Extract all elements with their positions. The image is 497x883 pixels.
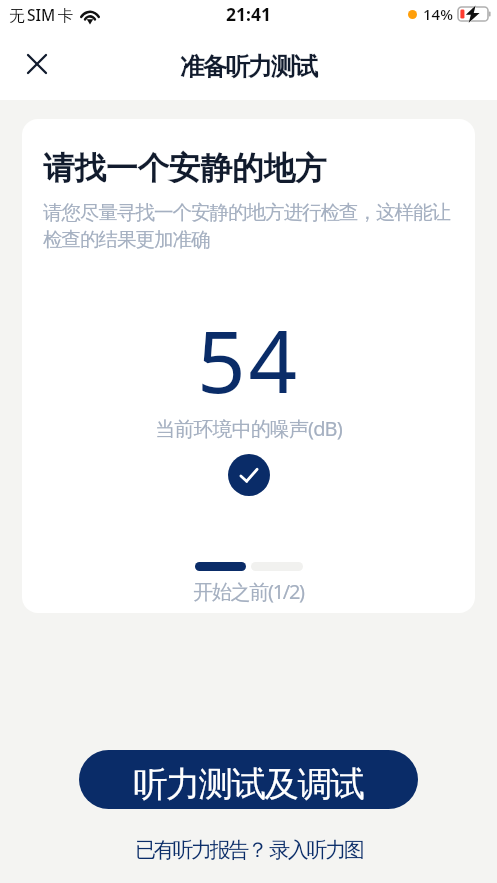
staticText: 开始之前(1/2) xyxy=(22,578,475,605)
staticText: 听力测试及调试 xyxy=(133,763,364,806)
staticText: 请您尽量寻找一个安静的地方进行检查，这样能让检查的结果更加准确 xyxy=(43,200,457,252)
staticText: 21:41 xyxy=(226,2,271,26)
staticText: 已有听力报告？ 录入听力图 xyxy=(135,835,363,864)
other: Noise level acceptable xyxy=(228,454,270,496)
button[interactable]: 听力测试及调试 xyxy=(79,750,418,809)
staticText: 54 xyxy=(22,302,475,418)
staticText: 当前环境中的噪声(dB) xyxy=(22,415,475,442)
staticText: 无 SIM 卡 xyxy=(9,4,74,25)
button[interactable]: 已有听力报告？ 录入听力图 xyxy=(125,832,373,867)
staticText: 准备听力测试 xyxy=(180,51,317,82)
staticText: 请找一个安静的地方 xyxy=(43,149,327,189)
button[interactable]: Close xyxy=(14,41,60,87)
staticText: 14% xyxy=(423,4,453,24)
